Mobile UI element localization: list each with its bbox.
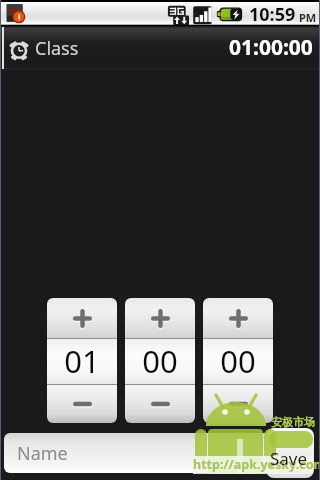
button[interactable]: Decrease bbox=[125, 385, 195, 423]
staticText: 00 bbox=[220, 340, 256, 382]
button[interactable]: Increase bbox=[203, 298, 273, 338]
button[interactable]: Increase bbox=[47, 298, 117, 338]
staticText: Class bbox=[35, 36, 79, 61]
staticText: 00 bbox=[142, 340, 178, 382]
staticText: http://apk.yesky.com bbox=[193, 456, 320, 473]
staticText: Name bbox=[17, 441, 68, 466]
button[interactable]: Decrease bbox=[203, 385, 273, 423]
button[interactable]: Increase bbox=[125, 298, 195, 338]
button[interactable]: Name bbox=[4, 433, 304, 473]
staticText: 10:59 bbox=[249, 2, 296, 27]
button[interactable]: Save bbox=[266, 428, 314, 478]
staticText: 01 bbox=[64, 340, 100, 382]
staticText: 01:00:00 bbox=[229, 33, 313, 62]
staticText: Save bbox=[270, 447, 308, 470]
staticText: 安极市场 bbox=[271, 415, 315, 429]
other: Alarm bbox=[8, 38, 30, 60]
button[interactable]: Decrease bbox=[47, 385, 117, 423]
staticText: PM bbox=[299, 10, 317, 25]
